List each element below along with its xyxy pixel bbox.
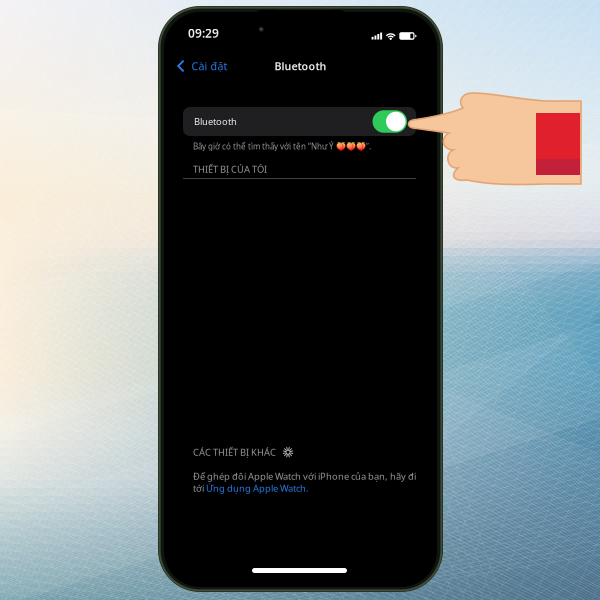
staticText: 09:29 [188,25,219,41]
staticText: Bluetooth [274,59,326,73]
staticText: Để ghép đôi Apple Watch với iPhone của b… [193,470,416,482]
staticText: THIẾT BỊ CỦA TÔI [193,163,267,175]
staticText: tới [193,482,206,494]
button[interactable]: tới [193,482,309,494]
staticText: Ứng dụng Apple Watch. [206,482,309,494]
staticText: Bây giờ có thể tìm thấy với tên “Như Ý 🍑… [193,141,371,152]
button[interactable]: Cài đặt [164,53,254,79]
button[interactable]: Bluetooth [183,107,416,136]
staticText: CÁC THIẾT BỊ KHÁC [193,446,276,458]
staticText: Cài đặt [191,59,227,73]
staticText: Bluetooth [194,115,237,128]
